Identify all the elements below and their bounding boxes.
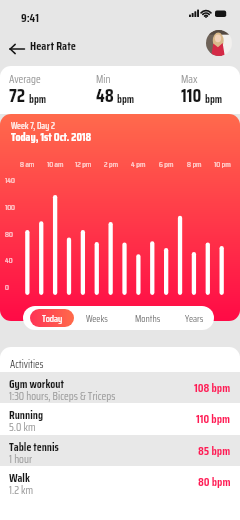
staticText: 110 bpm <box>196 409 231 428</box>
staticText: 108 bpm <box>194 378 231 397</box>
staticText: 48 <box>96 81 114 110</box>
button[interactable]: Table tennis <box>0 435 240 466</box>
staticText: 85 bpm <box>198 441 231 460</box>
staticText: 8 am <box>20 158 35 171</box>
staticText: 10 am <box>47 158 64 171</box>
button[interactable]: Walk <box>0 466 240 497</box>
staticText: 12 pm <box>75 158 92 171</box>
button[interactable]: Years <box>173 306 214 330</box>
staticText: 110 <box>181 81 202 110</box>
staticText: 0 <box>5 281 9 294</box>
staticText: 80 <box>5 228 13 241</box>
staticText: 80 bpm <box>198 472 231 491</box>
staticText: 1:30 hours, Biceps & Triceps <box>9 388 116 405</box>
button[interactable]: Running <box>0 403 240 434</box>
staticText: 2 pm <box>104 158 119 171</box>
staticText: Weeks <box>86 311 108 326</box>
staticText: 4 pm <box>131 158 146 171</box>
button[interactable]: Today <box>30 309 74 327</box>
staticText: 40 <box>5 254 13 267</box>
staticText: 1 hour <box>9 451 33 468</box>
staticText: Months <box>135 311 161 326</box>
staticText: Walk <box>9 469 30 487</box>
button[interactable]: Months <box>123 306 173 330</box>
staticText: 5.0 km <box>9 419 36 436</box>
staticText: 6 pm <box>159 158 174 171</box>
staticText: 9:41 <box>21 8 39 27</box>
staticText: 100 <box>5 201 15 214</box>
staticText: bpm <box>117 91 135 108</box>
staticText: 140 <box>5 174 15 187</box>
button[interactable]: Back <box>5 37 29 61</box>
staticText: 72 <box>9 81 26 110</box>
staticText: 10 pm <box>214 158 231 171</box>
staticText: bpm <box>29 91 47 108</box>
staticText: Min <box>96 71 111 88</box>
button[interactable]: Gym workout <box>0 372 240 403</box>
staticText: Gym workout <box>9 375 64 393</box>
button[interactable]: Weeks <box>74 306 120 330</box>
staticText: Today <box>42 311 63 326</box>
staticText: Running <box>9 406 44 424</box>
staticText: Heart Rate <box>30 36 76 55</box>
staticText: 1.2 km <box>9 482 34 499</box>
staticText: Average <box>9 71 41 88</box>
staticText: Activities <box>10 356 44 373</box>
staticText: bpm <box>205 91 223 108</box>
staticText: Today, 1st Oct. 2018 <box>11 128 92 146</box>
staticText: 8 pm <box>187 158 202 171</box>
button[interactable]: Profile <box>206 30 232 56</box>
staticText: Week 7, Day 2 <box>11 119 55 133</box>
staticText: Max <box>181 71 198 88</box>
staticText: Years <box>185 311 204 326</box>
staticText: Table tennis <box>9 438 59 456</box>
